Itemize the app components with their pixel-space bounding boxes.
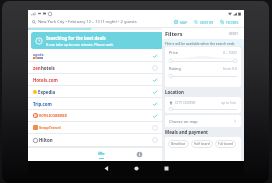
staticText: Filters will be available when the searc… — [165, 41, 235, 45]
staticText: MAP — [180, 20, 188, 24]
button[interactable]: FILTERS — [217, 17, 242, 27]
staticText: Breakfast — [171, 142, 186, 146]
button[interactable]: MAP — [171, 17, 191, 27]
staticText: FILTERS — [226, 20, 239, 24]
staticText: SORT BY — [200, 20, 214, 24]
button[interactable]: Half board — [191, 140, 213, 148]
staticText: Rating — [169, 66, 181, 71]
button[interactable]: Full board — [215, 140, 236, 148]
button[interactable]: Hotels.com — [28, 74, 162, 85]
button[interactable]: Home — [129, 161, 144, 176]
button[interactable]: RESET — [227, 30, 241, 38]
button[interactable]: Back — [99, 161, 114, 176]
staticText: New York City • February 12 – 13 (1 nigh… — [38, 19, 137, 25]
staticText: hotels — [41, 65, 55, 71]
staticText: from 0.0 — [223, 66, 237, 71]
staticText: zen — [33, 65, 41, 71]
staticText: H — [34, 114, 37, 118]
button[interactable]: Recents — [159, 161, 174, 176]
staticText: Hilton — [39, 137, 53, 143]
staticText: RESET — [229, 32, 239, 36]
button[interactable]: H — [28, 110, 162, 121]
button[interactable]: agoda — [28, 50, 162, 61]
button[interactable]: SnapTravel — [28, 122, 162, 133]
staticText: Trip.com — [33, 101, 52, 107]
staticText: CITY CENTER — [175, 100, 196, 105]
staticText: Price — [169, 50, 179, 55]
staticText: up to 5 mi — [221, 101, 237, 105]
button[interactable]: Breakfast — [168, 140, 189, 148]
staticText: Choose on map — [169, 119, 198, 124]
staticText: Filters — [165, 30, 183, 38]
staticText: It can take up to one minute. Please wai… — [46, 42, 114, 47]
button[interactable]: Expedia — [28, 86, 162, 97]
staticText: Location — [165, 89, 184, 95]
button[interactable]: Hilton — [28, 134, 162, 146]
staticText: SnapTravel — [39, 125, 61, 130]
staticText: Hotels.com — [33, 77, 58, 83]
button[interactable]: Info — [120, 148, 158, 161]
staticText: 0 – 1000 — [223, 50, 237, 55]
button[interactable]: Hotels — [82, 148, 120, 161]
button[interactable]: zen — [28, 62, 162, 73]
staticText: HOTELSCOMBINED — [39, 114, 67, 118]
staticText: Searching for the best deals — [46, 35, 106, 41]
button[interactable]: Choose on map — [165, 115, 241, 127]
button[interactable]: SORT BY — [191, 17, 217, 27]
staticText: Full board — [218, 142, 233, 146]
staticText: Expedia — [38, 89, 56, 95]
button[interactable]: Trip.com — [28, 98, 162, 109]
staticText: agoda — [33, 52, 44, 57]
staticText: Meals and payment — [165, 129, 209, 135]
staticText: Half board — [194, 142, 210, 146]
